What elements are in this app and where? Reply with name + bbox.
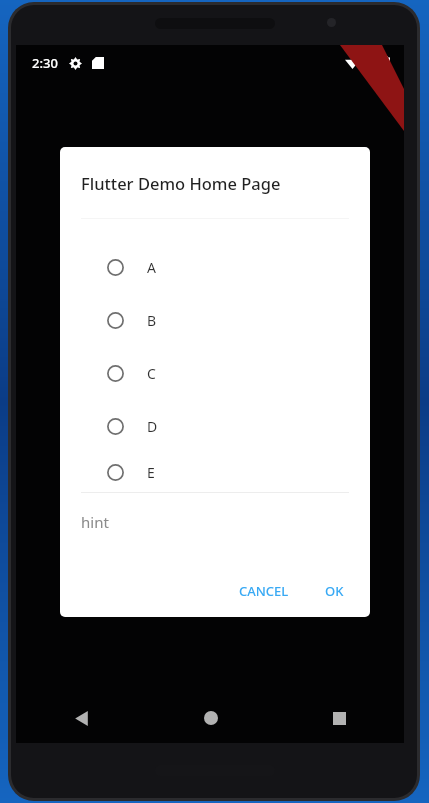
button[interactable]: Home (146, 693, 275, 743)
button[interactable]: Back (16, 693, 146, 743)
button[interactable]: hint (60, 493, 370, 551)
button[interactable]: A (60, 241, 370, 294)
staticText: C (147, 364, 156, 383)
staticText: D (147, 417, 158, 436)
button[interactable]: Recent apps (275, 693, 404, 743)
button[interactable]: B (60, 294, 370, 347)
staticText: hint (81, 512, 109, 532)
button[interactable]: OK (315, 574, 354, 608)
staticText: OK (325, 582, 344, 600)
staticText: 2:30 (32, 54, 58, 72)
button[interactable]: D (60, 400, 370, 453)
staticText: CANCEL (239, 582, 289, 600)
button[interactable]: E (60, 453, 370, 492)
staticText: E (147, 463, 155, 482)
staticText: Flutter Demo Home Page (81, 172, 281, 194)
staticText: B (147, 311, 157, 330)
staticText: A (147, 258, 156, 277)
button[interactable]: C (60, 347, 370, 400)
button[interactable]: CANCEL (229, 574, 299, 608)
